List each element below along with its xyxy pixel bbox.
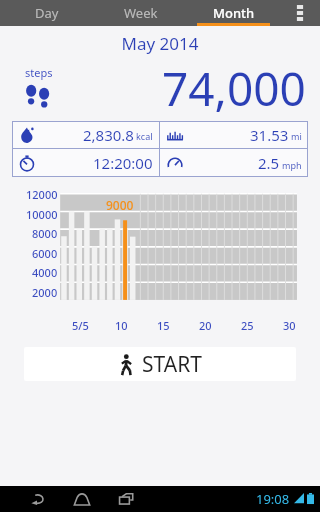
staticText: 2000 (32, 285, 58, 300)
staticText: kcal (136, 130, 153, 142)
staticText: Month (213, 4, 255, 22)
staticText: 30 (283, 318, 296, 333)
button[interactable]: Recent apps (110, 486, 142, 512)
staticText: 9000 (106, 197, 134, 213)
staticText: Day (35, 4, 59, 22)
staticText: 25 (241, 318, 254, 333)
staticText: 12:20:00 (93, 153, 153, 173)
staticText: 2.5 (258, 153, 280, 173)
staticText: 6000 (32, 246, 58, 261)
staticText: 74,000 (162, 57, 306, 113)
staticText: START (142, 350, 202, 379)
staticText: mi (291, 130, 302, 142)
staticText: 10000 (26, 207, 58, 222)
staticText: 5/5 (72, 318, 89, 333)
staticText: 10 (115, 318, 128, 333)
staticText: Week (124, 4, 158, 22)
button[interactable]: More options (280, 0, 320, 26)
button[interactable]: Home (66, 486, 98, 512)
staticText: mph (282, 159, 302, 171)
staticText: May 2014 (0, 32, 320, 55)
staticText: 31.53 (250, 125, 289, 145)
button[interactable]: Week (94, 0, 187, 26)
staticText: 8000 (32, 226, 58, 241)
staticText: 4000 (32, 265, 58, 280)
staticText: 20 (199, 318, 212, 333)
staticText: 2,830.8 (83, 125, 134, 145)
button[interactable]: Back (22, 486, 54, 512)
button[interactable]: Day (0, 0, 94, 26)
staticText: 19:08 (256, 490, 290, 508)
button[interactable]: START (24, 347, 296, 381)
staticText: 15 (157, 318, 170, 333)
button[interactable]: Month (187, 0, 280, 26)
staticText: steps (25, 65, 53, 80)
staticText: 12000 (26, 187, 58, 202)
